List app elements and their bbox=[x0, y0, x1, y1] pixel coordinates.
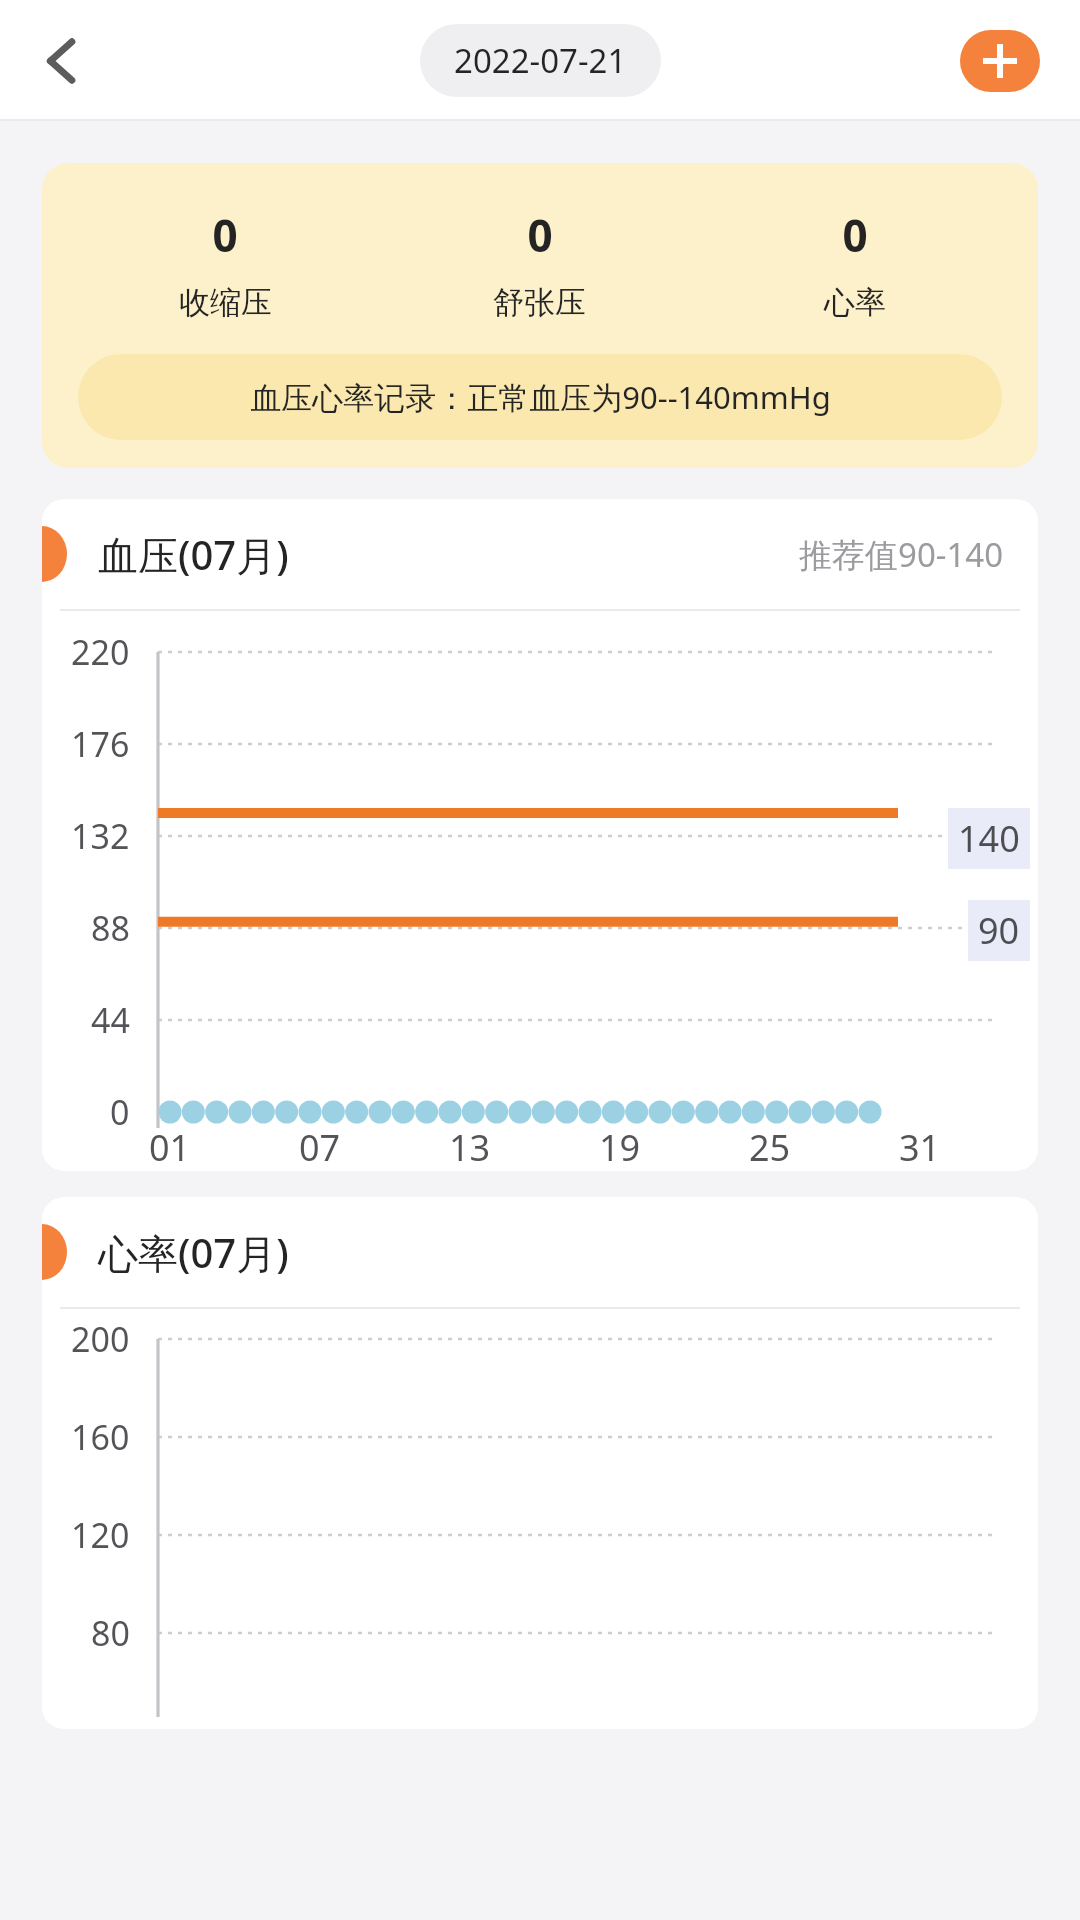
staticText: 0 bbox=[110, 1089, 130, 1135]
staticText: 收缩压 bbox=[179, 283, 272, 322]
staticText: 88 bbox=[91, 905, 130, 951]
button[interactable]: 血压(07月) bbox=[42, 499, 1038, 1171]
staticText: 44 bbox=[91, 997, 130, 1043]
staticText: 90 bbox=[978, 906, 1020, 955]
staticText: 200 bbox=[71, 1316, 130, 1362]
staticText: 25 bbox=[749, 1123, 791, 1171]
staticText: 13 bbox=[449, 1123, 491, 1171]
staticText: 140 bbox=[958, 814, 1020, 863]
staticText: 2022-07-21 bbox=[454, 38, 627, 83]
staticText: 01 bbox=[149, 1123, 191, 1171]
staticText: 0 bbox=[212, 205, 238, 265]
staticText: 160 bbox=[71, 1414, 130, 1460]
staticText: 80 bbox=[91, 1610, 130, 1656]
button[interactable]: Add record bbox=[960, 30, 1040, 92]
staticText: 舒张压 bbox=[493, 283, 586, 322]
staticText: 176 bbox=[71, 721, 130, 767]
button[interactable]: Back bbox=[26, 24, 100, 98]
staticText: 心率(07月) bbox=[98, 1225, 289, 1280]
staticText: 31 bbox=[899, 1123, 941, 1171]
button[interactable]: 心率(07月) bbox=[42, 1197, 1038, 1729]
staticText: 心率 bbox=[824, 283, 886, 322]
staticText: 血压心率记录：正常血压为90--140mmHg bbox=[250, 376, 831, 418]
staticText: 0 bbox=[842, 205, 868, 265]
staticText: 0 bbox=[527, 205, 553, 265]
staticText: 132 bbox=[71, 813, 130, 859]
staticText: 07 bbox=[299, 1123, 341, 1171]
staticText: 120 bbox=[71, 1512, 130, 1558]
staticText: 220 bbox=[71, 629, 130, 675]
button[interactable]: 0 bbox=[42, 163, 1038, 468]
staticText: 血压(07月) bbox=[98, 527, 289, 582]
staticText: 19 bbox=[599, 1123, 641, 1171]
staticText: 推荐值90-140 bbox=[799, 532, 1004, 577]
button[interactable]: 2022-07-21 bbox=[420, 24, 661, 97]
